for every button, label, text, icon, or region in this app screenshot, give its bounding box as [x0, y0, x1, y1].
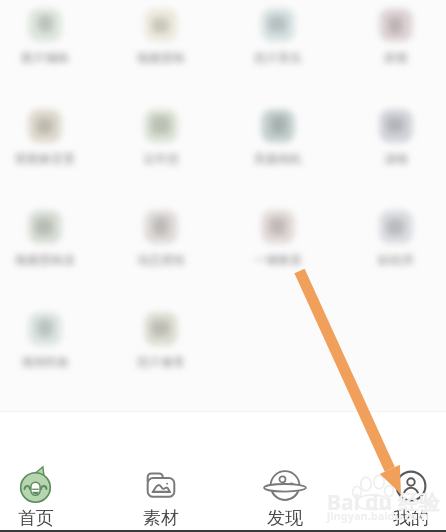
- staticText: 视频剪辑: [137, 50, 185, 65]
- staticText: 发现: [267, 507, 303, 530]
- staticText: 首页: [18, 507, 54, 530]
- staticText: 照片美化: [254, 50, 302, 65]
- staticText: 我的: [393, 507, 429, 530]
- staticText: 贴纸库: [378, 252, 414, 267]
- staticText: 滤镜: [384, 151, 408, 166]
- staticText: 照片修复: [137, 354, 185, 369]
- staticText: 美颜相机: [254, 151, 302, 166]
- staticText: 拼图: [384, 50, 408, 65]
- button[interactable]: Mine: [361, 468, 446, 530]
- button[interactable]: Discover: [235, 468, 335, 530]
- other: Mine: [393, 468, 429, 504]
- staticText: 图片编辑: [21, 50, 69, 65]
- staticText: 一键换装: [254, 252, 302, 267]
- other: Home: [18, 468, 54, 504]
- staticText: 视频剪辑器: [15, 252, 75, 267]
- other: Discover: [267, 468, 303, 504]
- staticText: 漫画特效: [21, 354, 69, 369]
- staticText: jingyan.baidu.com: [327, 508, 429, 523]
- staticText: Bai du 经验: [327, 488, 440, 517]
- staticText: 动态壁纸: [137, 252, 185, 267]
- staticText: 抠图换背景: [15, 151, 75, 166]
- button[interactable]: Home: [0, 468, 86, 530]
- other: Material: [143, 468, 179, 504]
- staticText: 证件照: [143, 151, 179, 166]
- staticText: 素材: [143, 507, 179, 530]
- button[interactable]: Material: [111, 468, 211, 530]
